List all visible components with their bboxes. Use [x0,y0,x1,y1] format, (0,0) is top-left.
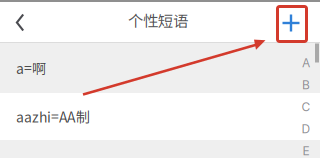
staticText: 个性短语 [128,9,188,31]
button[interactable]: Add [269,3,313,43]
staticText: D [301,122,310,136]
staticText: C [301,100,310,114]
button[interactable]: a=啊 [0,43,320,93]
staticText: a=啊 [16,58,46,78]
button[interactable]: Back [0,2,40,42]
staticText: E [302,144,309,158]
staticText: aazhi=AA制 [16,106,90,127]
staticText: B [302,78,310,92]
staticText: A [302,56,310,70]
button[interactable]: aazhi=AA制 [0,93,320,140]
